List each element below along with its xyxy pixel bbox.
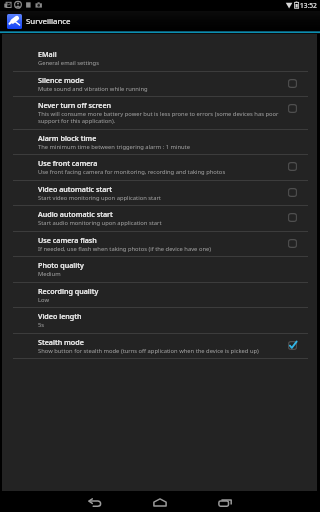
button[interactable]: Video length bbox=[2, 308, 317, 334]
button[interactable]: Recording quality bbox=[2, 283, 317, 308]
staticText: Mute sound and vibration while running bbox=[38, 85, 148, 93]
staticText: Show button for stealth mode (turns off … bbox=[38, 347, 259, 355]
staticText: Alarm block time bbox=[38, 133, 97, 143]
staticText: 13:52 bbox=[300, 1, 317, 10]
staticText: Use camera flash bbox=[38, 235, 97, 245]
staticText: Use front camera bbox=[38, 158, 98, 168]
button[interactable]: App icon bbox=[7, 14, 22, 29]
button[interactable]: EMail bbox=[2, 46, 317, 72]
button[interactable]: Alarm block time bbox=[2, 130, 317, 155]
staticText: If needed, use flash when taking photos … bbox=[38, 245, 211, 253]
button[interactable]: Stealth mode bbox=[2, 334, 317, 359]
button[interactable]: Back bbox=[75, 492, 116, 512]
staticText: Audio automatic start bbox=[38, 209, 113, 219]
staticText: Start audio monitoring upon application … bbox=[38, 219, 162, 227]
staticText: This will consume more battery power but… bbox=[38, 110, 282, 125]
staticText: EMail bbox=[38, 49, 57, 59]
staticText: Use front facing camera for monitoring, … bbox=[38, 168, 226, 176]
button[interactable]: Recents bbox=[204, 492, 246, 512]
button[interactable]: Use front camera bbox=[2, 155, 317, 181]
staticText: Video length bbox=[38, 311, 82, 321]
staticText: Recording quality bbox=[38, 286, 99, 296]
staticText: Medium bbox=[38, 270, 61, 278]
staticText: Photo quality bbox=[38, 260, 84, 270]
staticText: Silence mode bbox=[38, 75, 84, 85]
staticText: General email settings bbox=[38, 59, 99, 67]
button[interactable]: Never turn off screen bbox=[2, 97, 317, 130]
button[interactable]: Photo quality bbox=[2, 257, 317, 283]
staticText: Low bbox=[38, 296, 49, 304]
button[interactable]: Silence mode bbox=[2, 72, 317, 97]
staticText: Never turn off screen bbox=[38, 100, 112, 110]
button[interactable]: Use camera flash bbox=[2, 232, 317, 257]
staticText: The minimum time between triggering alar… bbox=[38, 143, 190, 151]
button[interactable]: Home bbox=[139, 492, 181, 512]
staticText: 5s bbox=[38, 321, 45, 329]
button[interactable]: Audio automatic start bbox=[2, 206, 317, 232]
staticText: Start video monitoring upon application … bbox=[38, 194, 161, 202]
staticText: Surveillance bbox=[26, 16, 71, 27]
staticText: Video automatic start bbox=[38, 184, 113, 194]
button[interactable]: Video automatic start bbox=[2, 181, 317, 206]
staticText: Stealth mode bbox=[38, 337, 84, 347]
